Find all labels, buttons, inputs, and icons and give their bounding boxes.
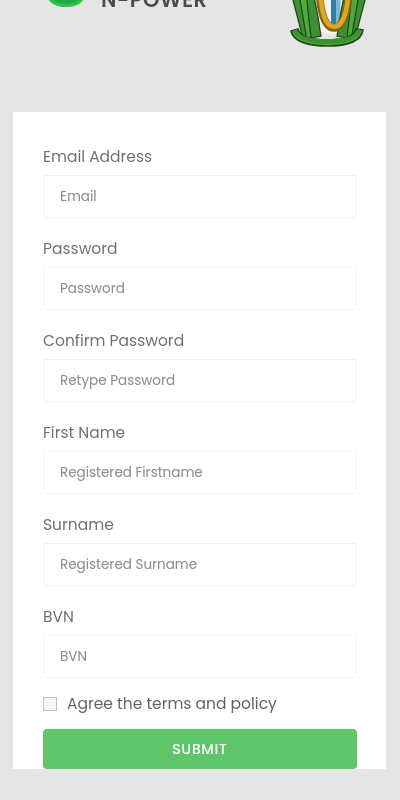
staticText: Surname <box>43 514 114 536</box>
staticText: Retype Password <box>60 371 176 390</box>
staticText: Email Address <box>43 146 153 168</box>
staticText: Password <box>60 279 125 298</box>
button[interactable]: Registered Surname <box>43 543 357 586</box>
staticText: Confirm Password <box>43 330 185 352</box>
staticText: Password <box>43 238 118 260</box>
staticText: BVN <box>43 606 74 628</box>
button[interactable]: SUBMIT <box>43 729 357 769</box>
button[interactable]: Password <box>43 267 357 310</box>
staticText: N-POWER <box>101 0 208 14</box>
button[interactable]: Retype Password <box>43 359 357 402</box>
staticText: Agree the terms and policy <box>67 693 277 715</box>
button[interactable]: Agree the terms and policy <box>43 693 357 715</box>
button[interactable]: Registered Firstname <box>43 451 357 494</box>
button[interactable]: Email <box>43 175 357 218</box>
staticText: First Name <box>43 422 126 444</box>
staticText: Registered Surname <box>60 555 198 574</box>
staticText: SUBMIT <box>172 739 228 759</box>
staticText: BVN <box>60 647 87 666</box>
staticText: Email <box>60 187 97 206</box>
staticText: Registered Firstname <box>60 463 203 482</box>
button[interactable]: BVN <box>43 635 357 678</box>
